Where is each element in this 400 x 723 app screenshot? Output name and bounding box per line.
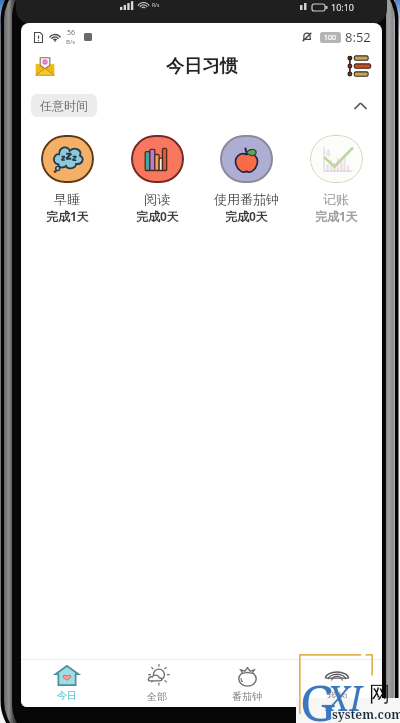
staticText: system.com — [332, 706, 400, 722]
staticText: 56 — [67, 28, 76, 38]
staticText: 任意时间 — [40, 98, 88, 113]
staticText: 我的 — [327, 690, 347, 703]
staticText: 今日 — [57, 689, 77, 702]
staticText: 使用番茄钟 — [214, 191, 279, 207]
staticText: 完成0天 — [225, 208, 268, 224]
staticText: G — [300, 668, 336, 723]
staticText: 完成1天 — [46, 208, 89, 224]
staticText: XI — [327, 675, 362, 721]
button[interactable]: Collapse — [349, 95, 371, 117]
staticText: 阅读 — [144, 191, 170, 207]
button[interactable]: 早睡 — [23, 129, 111, 224]
staticText: 网 — [369, 681, 390, 707]
staticText: R/s — [152, 2, 160, 9]
staticText: 完成1天 — [315, 208, 358, 224]
button[interactable]: 任意时间 — [31, 94, 97, 117]
button[interactable]: 全部 — [112, 660, 202, 707]
button[interactable]: 阅读 — [113, 129, 201, 224]
staticText: 8:52 — [345, 28, 371, 46]
button[interactable]: Timeline — [346, 54, 370, 78]
staticText: 10:10 — [331, 1, 355, 13]
staticText: 早睡 — [54, 191, 80, 207]
button[interactable]: 记账 — [292, 129, 380, 224]
button[interactable]: 今日 — [21, 660, 112, 707]
staticText: B/s — [66, 38, 76, 46]
staticText: 今日习惯 — [166, 55, 238, 78]
staticText: 全部 — [147, 690, 167, 703]
staticText: 记账 — [323, 191, 349, 207]
staticText: 完成0天 — [136, 208, 179, 224]
button[interactable]: 我的 — [292, 660, 382, 707]
staticText: 100 — [324, 33, 337, 43]
button[interactable]: 使用番茄钟 — [202, 129, 290, 224]
button[interactable]: 番茄钟 — [202, 660, 292, 707]
staticText: 番茄钟 — [232, 690, 262, 703]
button[interactable]: Messages — [31, 52, 59, 80]
